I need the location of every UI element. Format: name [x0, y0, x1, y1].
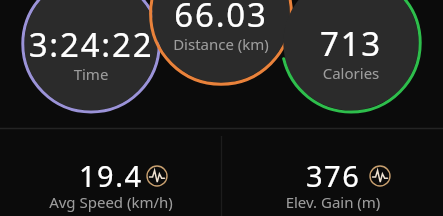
button[interactable]: 19.4 — [1, 148, 221, 200]
staticText: 376 — [306, 156, 361, 195]
staticText: 3:24:22 — [0, 22, 191, 67]
staticText: Distance (km) — [121, 34, 321, 54]
staticText: Avg Speed (km/h) — [1, 192, 221, 212]
staticText: Time — [0, 64, 191, 84]
staticText: Calories — [251, 63, 443, 83]
staticText: 66.03 — [121, 0, 321, 37]
staticText: 19.4 — [79, 156, 143, 195]
staticText: 713 — [251, 21, 443, 66]
staticText: Elev. Gain (m) — [223, 192, 443, 212]
button[interactable]: 376 — [223, 148, 443, 200]
other: Activity details — [146, 165, 168, 187]
other: Activity details — [369, 165, 391, 187]
